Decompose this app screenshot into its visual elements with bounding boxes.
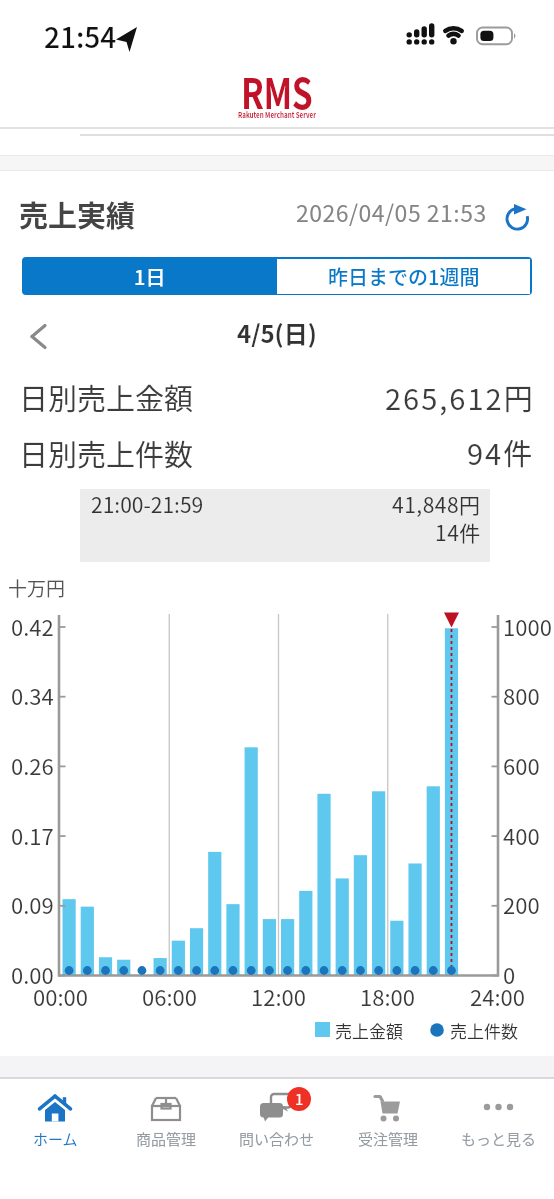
staticText: 昨日までの1週間 [328,262,480,291]
staticText: 0.34 [11,679,54,711]
staticText: 日別売上件数 [19,432,194,474]
staticText: 0.26 [11,749,54,781]
staticText: 1 [295,1088,304,1110]
staticText: 24:00 [470,980,525,1012]
button[interactable]: ホーム [10,1082,100,1157]
staticText: 12:00 [251,980,306,1012]
staticText: 受注管理 [358,1128,419,1150]
staticText: 2026/04/05 21:53 [296,195,487,228]
staticText: 0.09 [11,888,54,920]
button[interactable]: 受注管理 [343,1082,433,1157]
staticText: 18:00 [360,980,415,1012]
button[interactable]: もっと見る [454,1082,544,1157]
button[interactable]: 1日 [22,257,277,295]
staticText: 売上金額 [335,1018,403,1043]
staticText: 00:00 [33,980,88,1012]
staticText: RMS [241,60,313,121]
staticText: 日別売上金額 [19,376,194,418]
staticText: 265,612円 [385,376,535,418]
staticText: 0.17 [11,819,54,851]
staticText: 0.00 [11,958,54,990]
staticText: 41,848円 [392,489,481,519]
staticText: 商品管理 [136,1128,197,1150]
staticText: 21:54 [44,16,117,57]
staticText: 14件 [435,517,481,547]
staticText: 4/5(日) [237,315,317,350]
staticText: 1000 [503,610,552,642]
staticText: 400 [503,819,540,851]
button[interactable] [503,204,533,234]
staticText: 200 [503,888,540,920]
staticText: 十万円 [8,574,66,602]
staticText: 94件 [467,431,535,473]
staticText: 売上実績 [19,193,136,235]
button[interactable]: 1 [232,1082,322,1157]
staticText: もっと見る [461,1128,537,1150]
staticText: 21:00-21:59 [91,489,204,519]
staticText: 800 [503,679,540,711]
staticText: 1日 [134,262,166,291]
staticText: 0 [503,958,516,990]
staticText: 600 [503,749,540,781]
staticText: 問い合わせ [239,1128,315,1150]
staticText: 0.42 [11,610,54,642]
staticText: ホーム [33,1128,78,1150]
staticText: 06:00 [142,980,197,1012]
button[interactable]: 商品管理 [121,1082,211,1157]
button[interactable] [24,322,52,350]
button[interactable]: 昨日までの1週間 [277,259,530,294]
staticText: 売上件数 [450,1018,518,1043]
staticText: Rakuten Merchant Server [238,109,316,121]
